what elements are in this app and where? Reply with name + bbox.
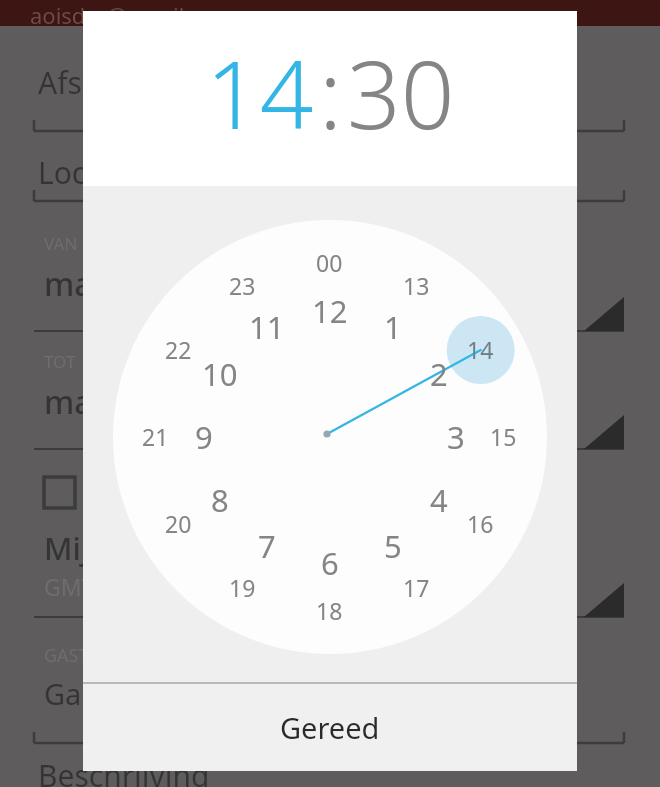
staticText: 14 [467,334,494,365]
staticText: 21 [142,421,169,452]
staticText: 12 [312,290,348,332]
staticText: 5 [384,525,402,567]
staticText: 16 [467,508,494,539]
button[interactable]: 13 [403,270,430,301]
button[interactable]: Gereed [83,684,577,771]
staticText: Gereed [280,708,380,747]
staticText: Dele [88,477,137,508]
button[interactable]: 9 [195,416,213,458]
staticText: 18 [316,595,343,626]
staticText: 17 [403,572,430,603]
staticText: Mijn agenda [44,527,228,569]
button[interactable]: 16 [467,508,494,539]
staticText: 22 [165,334,192,365]
button[interactable]: 8 [211,479,229,521]
button[interactable]: 3 [447,416,465,458]
staticText: ma 30 mrt [44,380,202,424]
button[interactable]: 15 [490,421,517,452]
button[interactable]: 14 [206,29,314,157]
button[interactable]: 19 [229,572,256,603]
staticText: Gasten [44,674,141,713]
staticText: 30 [347,29,455,157]
staticText: 4 [430,479,448,521]
staticText: 19 [229,572,256,603]
button[interactable]: 5 [384,525,402,567]
staticText: ma 30 mrt [44,262,202,306]
button[interactable]: 12 [312,290,348,332]
staticText: TOT [44,350,76,373]
button[interactable]: 1 [384,306,402,348]
staticText: Beschrijving [38,755,210,787]
button[interactable]: 21 [142,421,169,452]
staticText: Locatie [38,152,139,193]
staticText: GMT+01:00 [44,571,167,602]
staticText: 14 [206,29,314,157]
button[interactable]: 20 [165,508,192,539]
button[interactable]: 23 [229,270,256,301]
button[interactable]: 18 [316,595,343,626]
staticText: 9 [195,416,213,458]
button[interactable]: 2 [430,353,448,395]
staticText: 10 [202,353,238,395]
staticText: 13 [403,270,430,301]
button[interactable]: 30 [347,29,455,157]
button[interactable]: 4 [430,479,448,521]
button[interactable]: 17 [403,572,430,603]
staticText: 3 [447,416,465,458]
button[interactable]: 6 [321,542,339,584]
staticText: GASTEN [44,643,113,668]
button[interactable]: 10 [202,353,238,395]
staticText: 15 [490,421,517,452]
button[interactable]: 22 [165,334,192,365]
staticText: 1 [384,306,402,348]
staticText: 6 [321,542,339,584]
button[interactable]: 14 [467,334,494,365]
staticText: 8 [211,479,229,521]
staticText: : [319,29,342,157]
staticText: 23 [229,270,256,301]
staticText: 7 [258,525,276,567]
staticText: Afspraaknaam [38,62,243,103]
button[interactable]: 7 [258,525,276,567]
button[interactable]: 11 [249,306,285,348]
staticText: 20 [165,508,192,539]
button[interactable]: 00 [316,247,343,278]
button[interactable]: Clock face, 14 hours selected [83,186,577,682]
staticText: 11 [249,306,285,348]
staticText: aoisder@gmail.com [30,0,235,30]
staticText: VAN [44,232,78,255]
staticText: 2 [430,353,448,395]
staticText: 00 [316,247,343,278]
